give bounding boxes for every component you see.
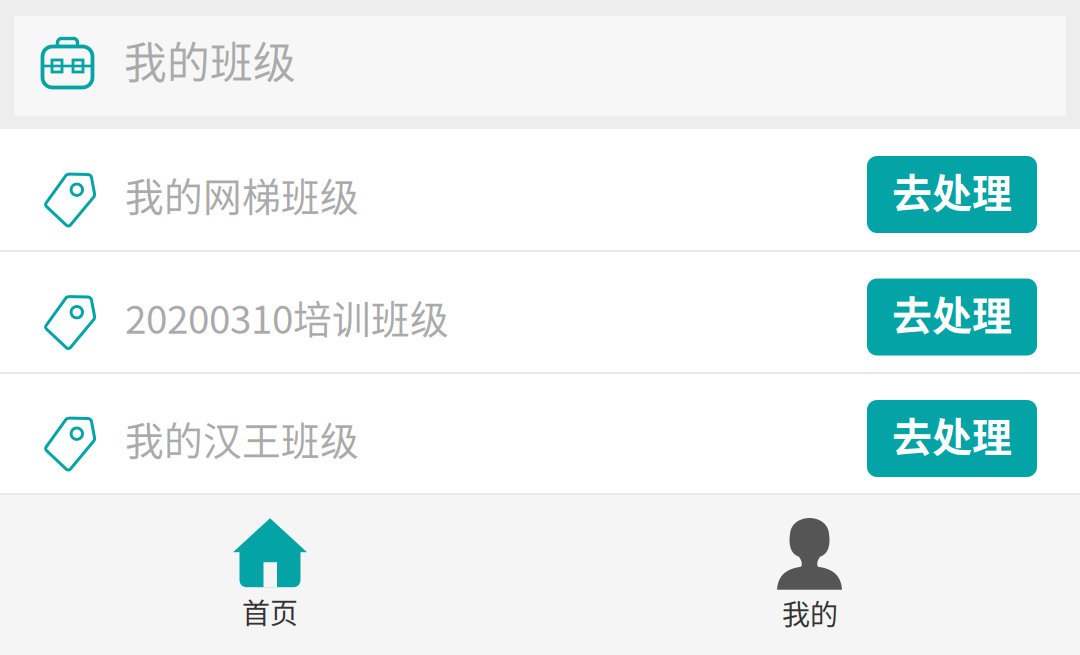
button[interactable]: 我的网梯班级 (0, 129, 1080, 250)
button[interactable]: 去处理 (867, 395, 1037, 472)
staticText: 去处理 (892, 161, 1012, 219)
staticText: 首页 (242, 591, 298, 632)
staticText: 我的网梯班级 (125, 166, 359, 222)
staticText: 20200310培训班级 (125, 289, 449, 345)
button[interactable]: 去处理 (867, 273, 1037, 350)
button[interactable]: 我的汉王班级 (0, 374, 1080, 493)
button[interactable]: 我的 (540, 495, 1080, 655)
staticText: 去处理 (892, 405, 1012, 463)
staticText: 我的汉王班级 (125, 410, 359, 466)
button[interactable]: 首页 (0, 495, 540, 655)
staticText: 我的班级 (124, 29, 296, 91)
button[interactable]: 去处理 (867, 151, 1037, 228)
staticText: 去处理 (892, 284, 1012, 342)
button[interactable]: 20200310培训班级 (0, 252, 1080, 372)
staticText: 我的 (782, 593, 838, 633)
button[interactable]: 我的班级 (0, 0, 1080, 129)
